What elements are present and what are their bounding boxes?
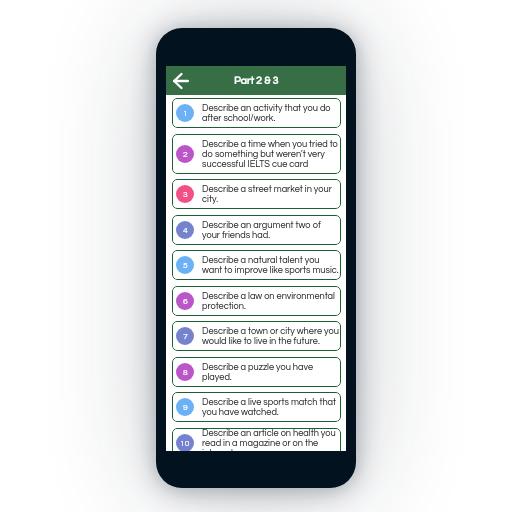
staticText: Describe a street market in your city.	[202, 184, 340, 204]
button[interactable]: 9	[172, 392, 341, 422]
staticText: 3	[183, 190, 188, 199]
staticText: Describe a puzzle you have played.	[202, 362, 340, 382]
staticText: Describe an article on health you read i…	[202, 428, 340, 451]
staticText: Describe an article on health you read i…	[202, 428, 340, 451]
staticText: Describe an activity that you do after s…	[202, 103, 340, 123]
staticText: 7	[183, 332, 188, 341]
staticText: Describe a live sports match that you ha…	[202, 397, 340, 417]
staticText: Describe a town or city where you would …	[202, 326, 340, 346]
button[interactable]: 8	[172, 357, 341, 387]
staticText: 2	[183, 150, 188, 159]
staticText: 6	[183, 297, 188, 306]
staticText: Describe a natural talent you want to im…	[202, 255, 340, 275]
staticText: Describe a live sports match that you ha…	[202, 397, 340, 417]
staticText: Part 2 & 3	[234, 75, 279, 86]
staticText: 5	[183, 261, 188, 270]
staticText: Describe a time when you tried to do som…	[202, 139, 340, 169]
staticText: 9	[183, 403, 188, 412]
staticText: Describe a time when you tried to do som…	[202, 139, 340, 169]
staticText: Describe a puzzle you have played.	[202, 362, 340, 382]
staticText: 1	[183, 109, 188, 118]
staticText: Describe a law on environmental protecti…	[202, 291, 340, 311]
button[interactable]: 10	[172, 428, 341, 451]
button[interactable]: 5	[172, 250, 341, 280]
staticText: Describe an argument two of your friends…	[202, 220, 340, 240]
button[interactable]: 2	[172, 134, 341, 174]
button[interactable]: 4	[172, 215, 341, 245]
staticText: Describe an activity that you do after s…	[202, 103, 340, 123]
staticText: Describe a natural talent you want to im…	[202, 255, 340, 275]
button[interactable]: 6	[172, 286, 341, 316]
staticText: Describe a street market in your city.	[202, 184, 340, 204]
button[interactable]: Back	[169, 70, 191, 92]
button[interactable]: 1	[172, 98, 341, 128]
staticText: 4	[183, 226, 188, 235]
staticText: Describe a town or city where you would …	[202, 326, 340, 346]
staticText: Describe a law on environmental protecti…	[202, 291, 340, 311]
button[interactable]: 3	[172, 179, 341, 209]
button[interactable]: 7	[172, 321, 341, 351]
staticText: 8	[183, 368, 188, 377]
staticText: 10	[180, 439, 190, 448]
staticText: Describe an argument two of your friends…	[202, 220, 340, 240]
